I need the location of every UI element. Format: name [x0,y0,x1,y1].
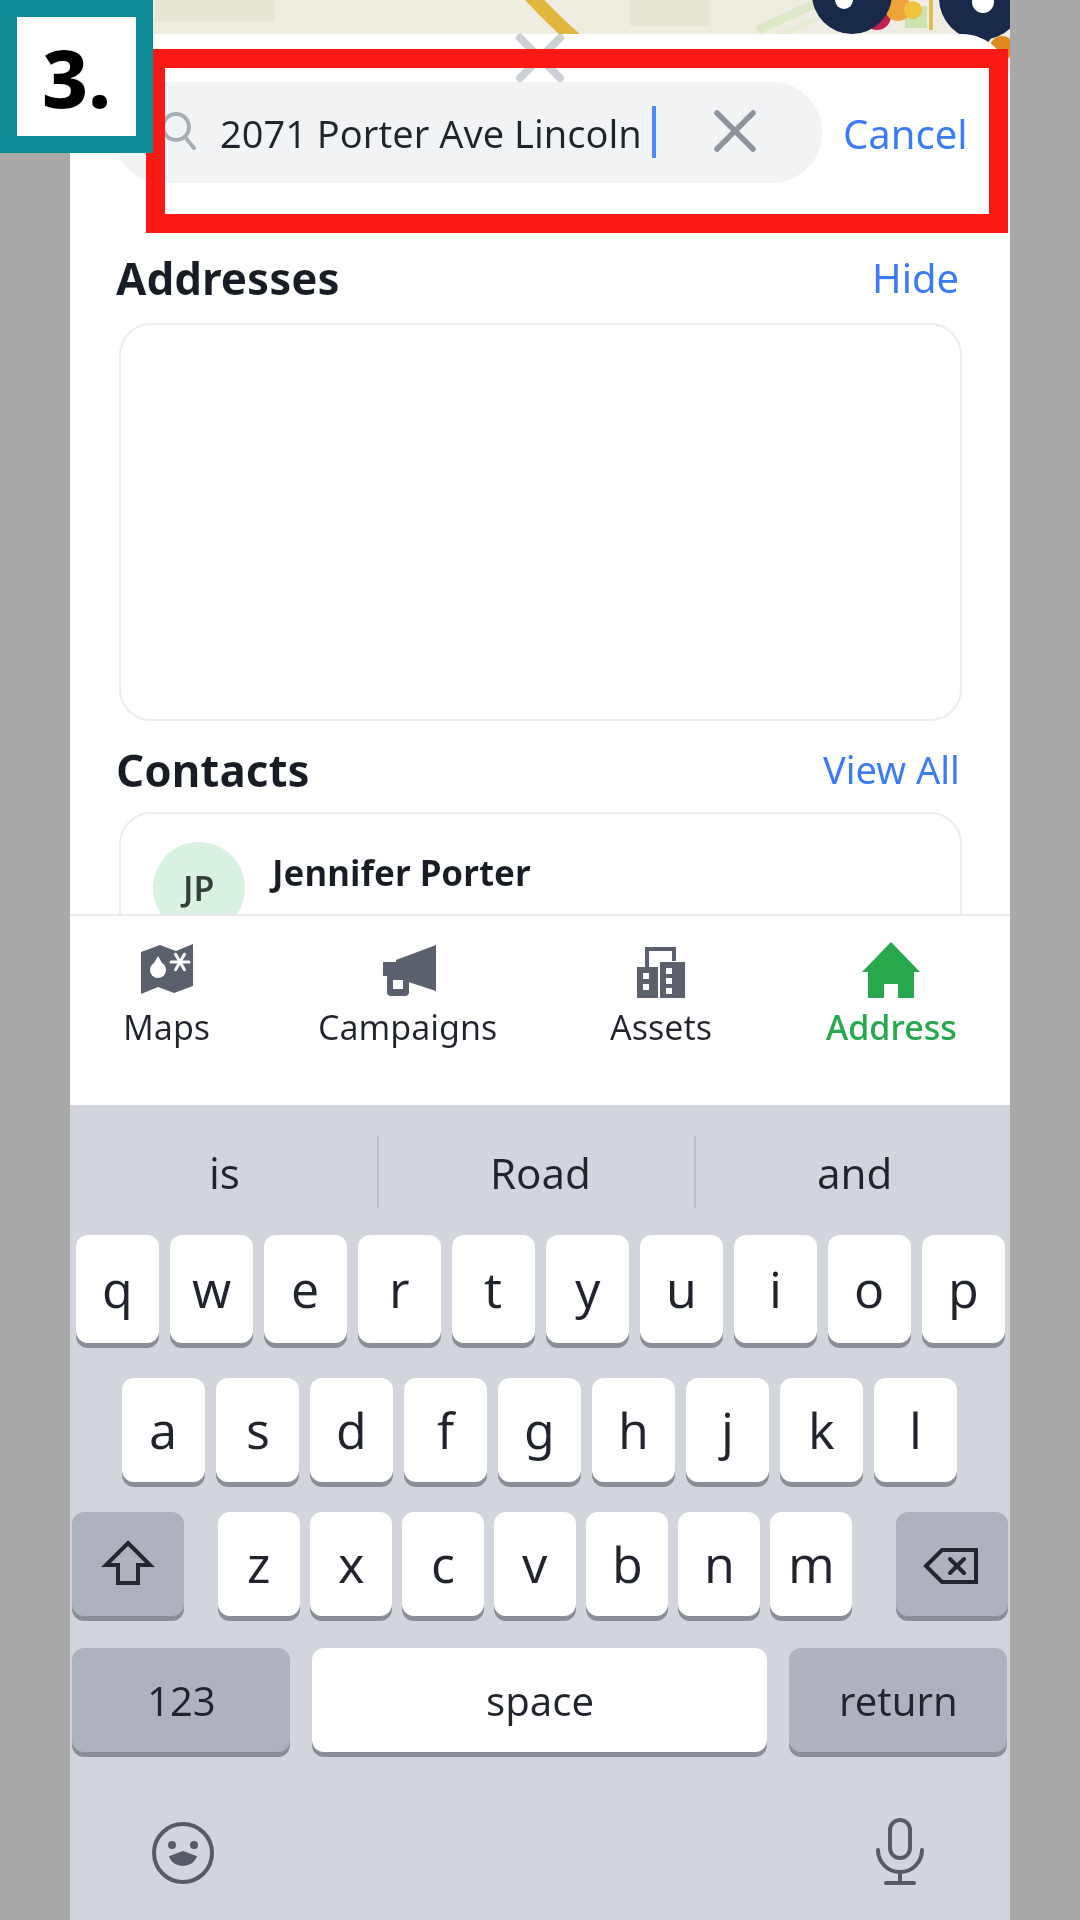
staticText: k [808,1396,835,1464]
button[interactable]: q [76,1235,159,1343]
button[interactable] [821,930,961,1060]
button[interactable]: t [452,1235,535,1343]
staticText: z [247,1530,271,1598]
staticText: c [431,1530,455,1598]
button[interactable] [72,1512,184,1616]
staticText: 123 [147,1673,216,1727]
button[interactable] [140,1810,226,1896]
staticText: Hide [872,250,960,304]
button[interactable]: f [404,1378,487,1482]
button[interactable]: j [686,1378,769,1482]
staticText: p [948,1255,979,1323]
staticText: d [336,1396,367,1464]
button[interactable]: k [780,1378,863,1482]
staticText: and [817,1144,893,1201]
button[interactable] [113,82,822,183]
staticText: Maps [123,1004,211,1050]
button[interactable] [591,930,731,1060]
button[interactable]: p [922,1235,1005,1343]
staticText: l [909,1396,922,1464]
button[interactable] [896,1512,1008,1616]
button[interactable]: Road [398,1136,682,1208]
staticText: s [246,1396,270,1464]
button[interactable]: h [592,1378,675,1482]
staticText: 2071 Porter Ave Lincoln [220,107,642,159]
button[interactable]: View All [793,740,989,798]
staticText: o [854,1255,885,1323]
staticText: Cancel [843,106,968,160]
staticText: Campaigns [318,1004,498,1050]
staticText: f [437,1396,455,1464]
button[interactable] [338,930,478,1060]
staticText: is [209,1144,240,1201]
button[interactable] [97,930,237,1060]
button[interactable]: a [122,1378,205,1482]
button[interactable]: Cancel [825,82,985,183]
button[interactable]: u [640,1235,723,1343]
staticText: Contacts [116,740,310,798]
staticText: g [524,1396,555,1464]
staticText: u [666,1255,697,1323]
staticText: b [612,1530,643,1598]
button[interactable]: y [546,1235,629,1343]
button[interactable] [860,1810,946,1896]
staticText: q [102,1255,133,1323]
staticText: Road [490,1144,591,1201]
staticText: w [192,1255,232,1323]
staticText: r [389,1255,410,1323]
button[interactable]: w [170,1235,253,1343]
button[interactable]: e [264,1235,347,1343]
staticText: t [484,1255,503,1323]
button[interactable]: s [216,1378,299,1482]
button[interactable]: g [498,1378,581,1482]
staticText: View All [823,743,960,795]
staticText: Assets [610,1004,713,1050]
staticText: i [769,1255,782,1323]
staticText: 3. [42,22,112,131]
staticText: return [839,1673,958,1727]
button[interactable]: return [789,1648,1007,1752]
staticText: e [291,1255,320,1323]
button[interactable]: space [312,1648,767,1752]
button[interactable]: 123 [72,1648,290,1752]
button[interactable]: b [586,1512,668,1616]
button[interactable]: r [358,1235,441,1343]
staticText: space [486,1673,594,1727]
staticText: a [149,1396,178,1464]
staticText: Jennifer Porter [272,849,531,897]
button[interactable]: i [734,1235,817,1343]
staticText: n [704,1530,735,1598]
staticText: x [338,1530,365,1598]
staticText: JP [183,865,215,911]
staticText: Address [826,1004,957,1050]
button[interactable]: and [715,1136,995,1208]
staticText: h [618,1396,649,1464]
button[interactable] [119,812,962,982]
button[interactable]: is [100,1136,348,1208]
staticText: j [721,1396,734,1464]
button[interactable]: c [402,1512,484,1616]
button[interactable]: Hide [870,248,962,306]
button[interactable]: n [678,1512,760,1616]
button[interactable]: l [874,1378,957,1482]
staticText: y [575,1255,601,1323]
staticText: v [522,1530,548,1598]
button[interactable]: x [310,1512,392,1616]
staticText: m [788,1530,835,1598]
staticText: Addresses [116,248,340,306]
button[interactable]: d [310,1378,393,1482]
button[interactable]: v [494,1512,576,1616]
button[interactable]: m [770,1512,852,1616]
button[interactable]: o [828,1235,911,1343]
button[interactable]: z [218,1512,300,1616]
